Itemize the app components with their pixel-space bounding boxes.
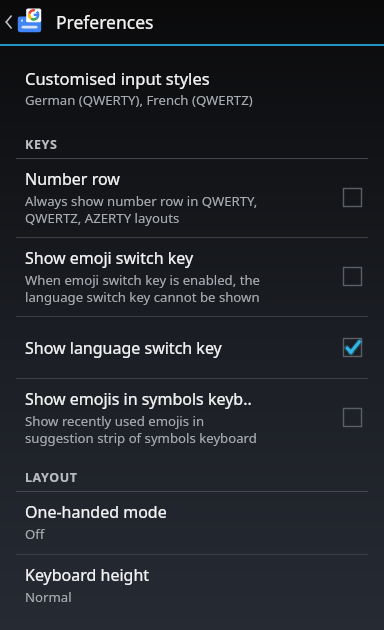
button[interactable]: Unchecked — [339, 184, 366, 211]
staticText: Keyboard height — [25, 564, 150, 586]
staticText: Customised input styles — [25, 67, 210, 89]
button[interactable]: Number row — [0, 159, 384, 237]
staticText: Show language switch key — [25, 337, 222, 359]
button[interactable]: Show language switch key — [0, 317, 384, 378]
staticText: When emoji switch key is enabled, the la… — [25, 271, 261, 306]
staticText: Off — [25, 525, 45, 543]
staticText: Number row — [25, 168, 120, 190]
staticText: German (QWERTY), French (QWERTZ) — [25, 91, 253, 109]
staticText: One-handed mode — [25, 501, 167, 523]
staticText: Show emojis in symbols keyb.. — [25, 388, 252, 410]
button[interactable]: Unchecked — [339, 263, 366, 290]
button[interactable]: Keyboard height — [0, 555, 384, 617]
button[interactable]: Checked — [339, 334, 366, 361]
staticText: Show recently used emojis in suggestion … — [25, 412, 257, 447]
staticText: KEYS — [25, 136, 58, 153]
staticText: Always show number row in QWERTY, QWERTZ… — [25, 192, 258, 227]
button[interactable]: Unchecked — [339, 404, 366, 431]
button[interactable]: Show emoji switch key — [0, 238, 384, 316]
button[interactable]: Show emojis in symbols keyb.. — [0, 379, 384, 457]
button[interactable]: Customised input styles — [0, 58, 384, 120]
staticText: Show emoji switch key — [25, 247, 194, 269]
staticText: Preferences — [56, 10, 154, 34]
button[interactable]: One-handed mode — [0, 492, 384, 554]
staticText: Normal — [25, 588, 72, 606]
button[interactable]: Back — [0, 3, 48, 41]
staticText: LAYOUT — [25, 469, 78, 486]
